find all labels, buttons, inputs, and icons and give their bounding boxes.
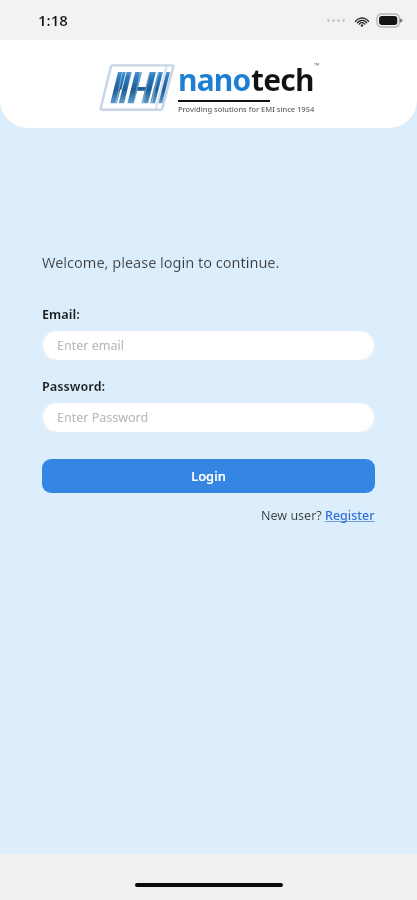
button[interactable]: Login [42,459,375,493]
staticText: Enter Password [57,409,149,426]
button[interactable]: Enter email [42,330,375,361]
staticText: Providing solutions for EMI since 1954 [178,104,315,114]
button[interactable]: Enter Password [42,402,375,433]
staticText: tech [251,59,314,100]
staticText: 1:18 [38,10,68,30]
other: MHW logo [98,60,176,114]
staticText: New user? [261,507,325,524]
staticText: nano [178,59,251,100]
staticText: Welcome, please login to continue. [42,252,280,272]
staticText: Enter email [57,337,124,354]
staticText: ™ [314,61,320,71]
button[interactable]: Register [325,507,375,524]
staticText: Email: [42,306,80,323]
staticText: Password: [42,378,106,395]
staticText: Register [325,507,375,524]
staticText: Login [191,467,226,485]
